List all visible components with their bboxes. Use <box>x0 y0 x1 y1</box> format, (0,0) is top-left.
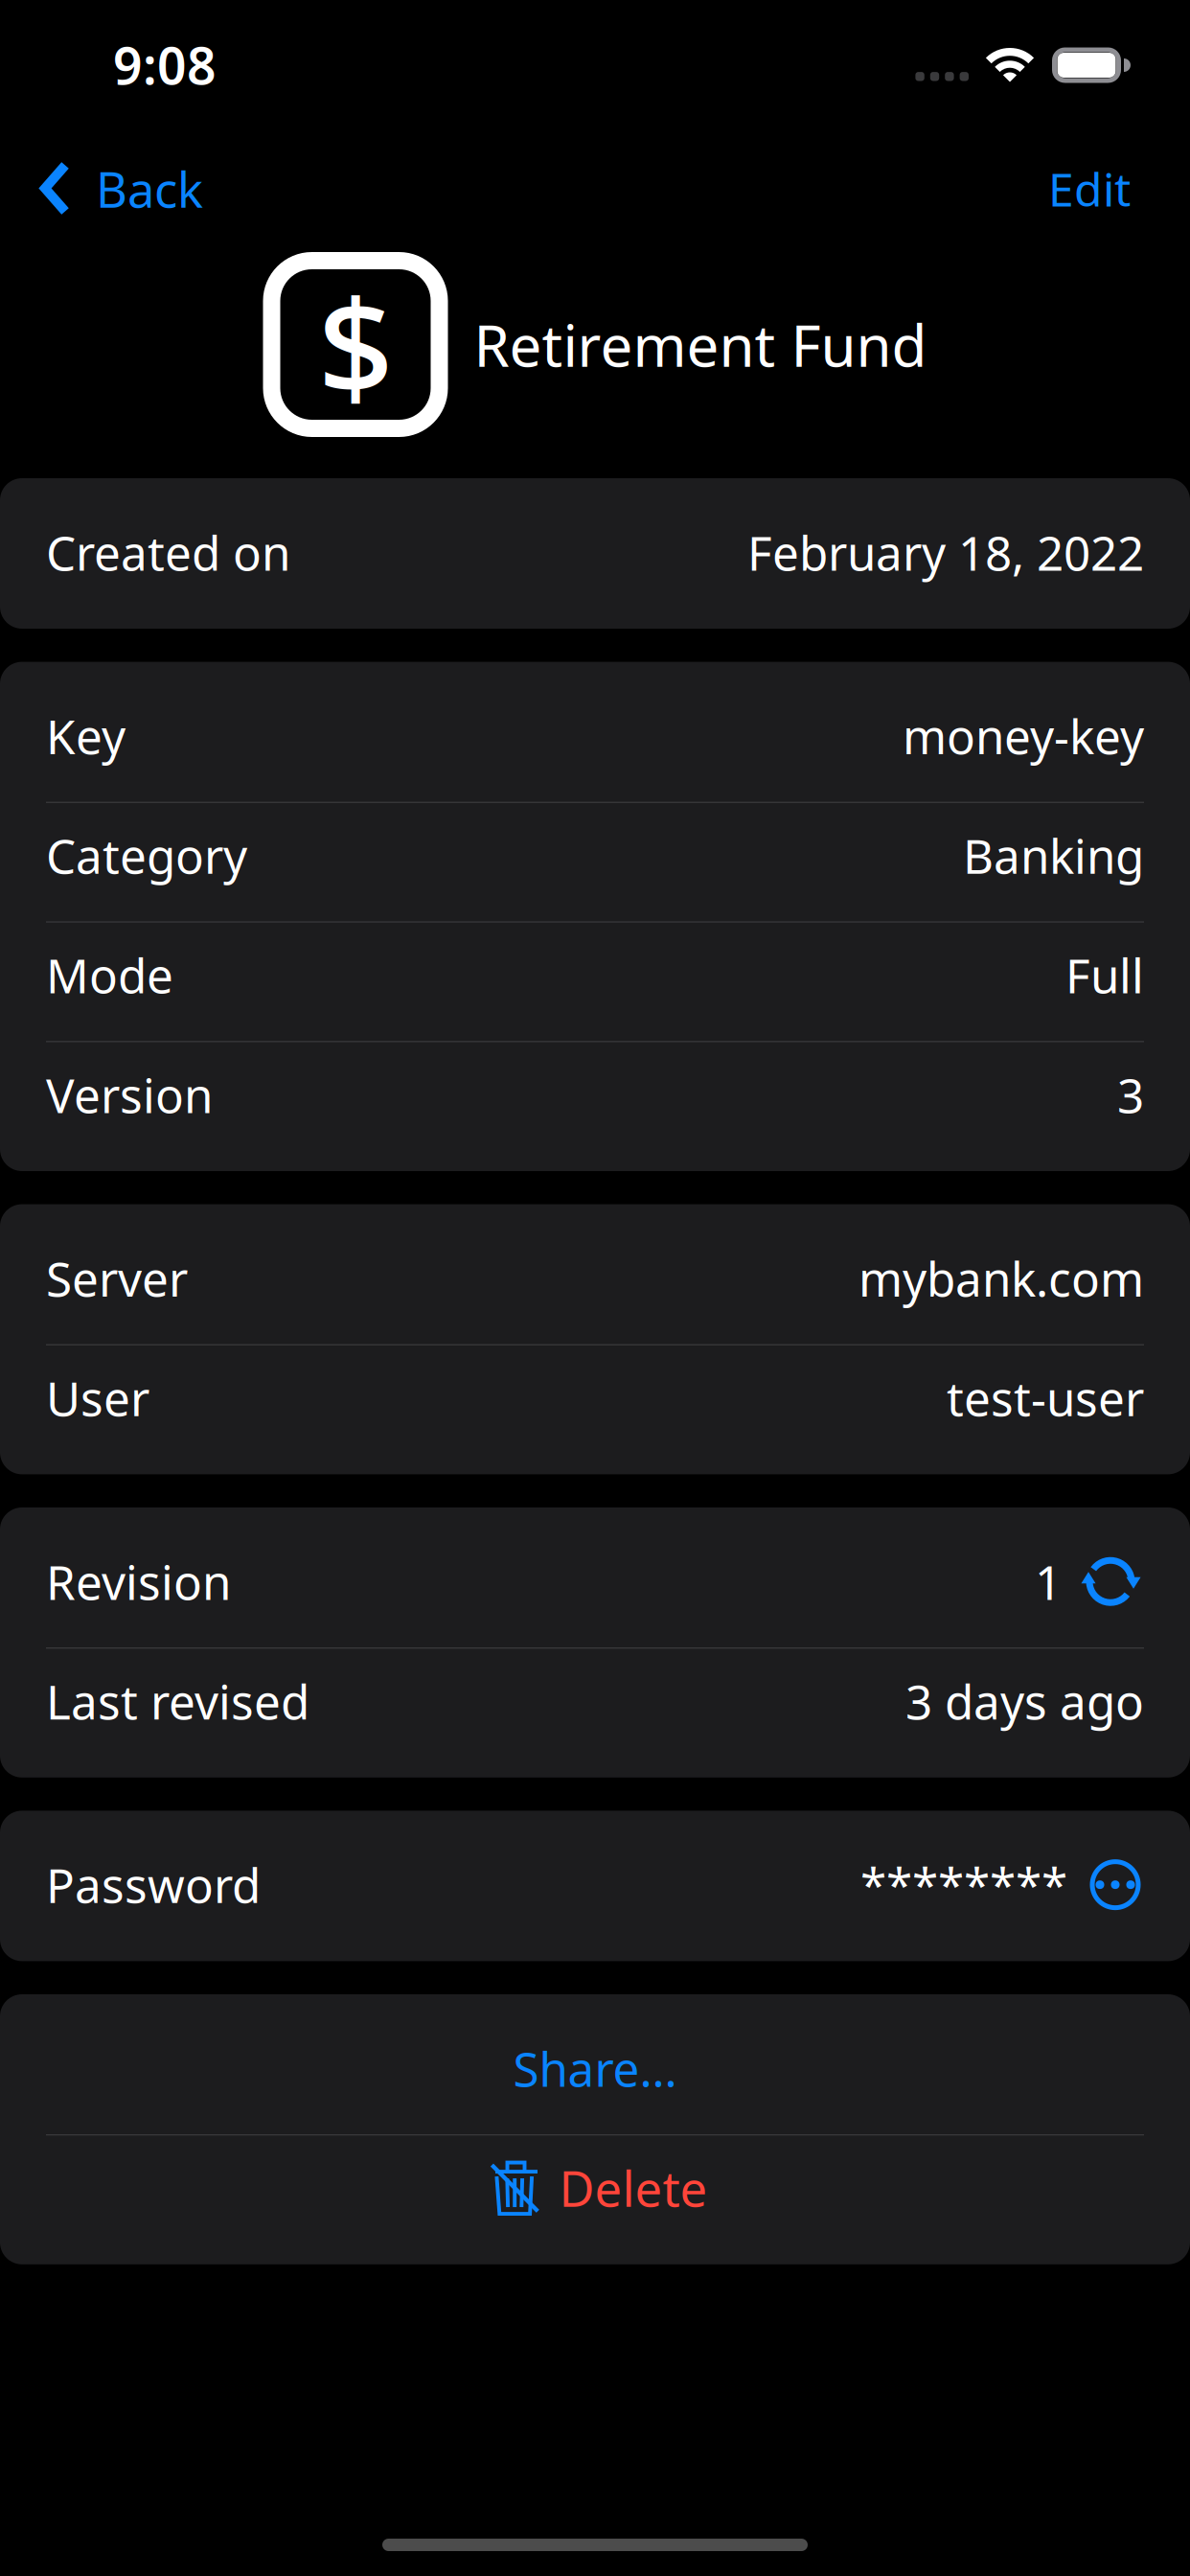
button[interactable]: Edit <box>1025 129 1154 248</box>
staticText: money-key <box>903 704 1144 767</box>
staticText: test-user <box>947 1366 1144 1429</box>
staticText: Share... <box>513 2037 677 2100</box>
button[interactable]: Share... <box>0 2016 1190 2134</box>
button[interactable]: Password actions <box>1067 1860 1144 1910</box>
staticText: Server <box>46 1247 188 1310</box>
button[interactable]: Delete <box>0 2135 1190 2254</box>
staticText: Mode <box>46 944 173 1006</box>
staticText: Delete <box>559 2156 708 2220</box>
staticText: mybank.com <box>858 1247 1144 1310</box>
staticText: Banking <box>963 824 1144 887</box>
staticText: 9:08 <box>113 31 217 99</box>
staticText: 3 <box>1117 1063 1144 1126</box>
staticText: 1 <box>1035 1550 1062 1613</box>
staticText: Last revised <box>46 1670 309 1732</box>
staticText: 3 days ago <box>905 1670 1144 1732</box>
staticText: ******** <box>860 1853 1067 1916</box>
staticText: Back <box>96 157 203 221</box>
staticText: Full <box>1065 944 1144 1006</box>
staticText: Revision <box>46 1550 231 1613</box>
staticText: User <box>46 1366 149 1429</box>
staticText: Version <box>46 1063 213 1126</box>
staticText: Password <box>46 1853 261 1916</box>
staticText: February 18, 2022 <box>747 521 1144 584</box>
staticText: Category <box>46 824 247 887</box>
staticText: Created on <box>46 521 290 584</box>
staticText: Retirement Fund <box>474 306 927 383</box>
button[interactable]: Back <box>0 129 222 248</box>
staticText: Key <box>46 704 126 767</box>
staticText: $ <box>318 256 393 433</box>
staticText: Edit <box>1048 158 1131 219</box>
button[interactable]: Revision <box>0 1529 1190 1647</box>
